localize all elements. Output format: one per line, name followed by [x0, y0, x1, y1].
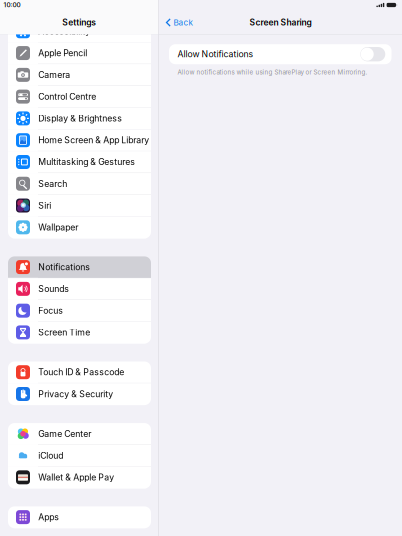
staticText: Wallet & Apple Pay [38, 472, 114, 483]
staticText: Search [38, 178, 67, 189]
button[interactable]: Search [8, 173, 151, 195]
button[interactable]: Screen Time [8, 322, 151, 343]
staticText: Allow notifications while using SharePla… [178, 68, 368, 76]
button[interactable]: Back [159, 15, 197, 29]
button[interactable]: Sounds [8, 278, 151, 300]
button[interactable]: iCloud [8, 445, 151, 467]
staticText: Multitasking & Gestures [38, 157, 135, 167]
staticText: Siri [38, 200, 51, 211]
staticText: Privacy & Security [38, 389, 113, 399]
button[interactable]: Multitasking & Gestures [8, 151, 151, 173]
staticText: Apple Pencil [38, 48, 87, 58]
button[interactable]: Focus [8, 300, 151, 322]
staticText: Screen Sharing [249, 17, 311, 28]
staticText: iCloud [38, 450, 63, 461]
staticText: Sounds [38, 284, 69, 294]
staticText: Accessibility [38, 26, 90, 36]
staticText: Back [173, 18, 192, 27]
button[interactable]: Home Screen & App Library [8, 129, 151, 151]
button[interactable]: Notifications [8, 256, 151, 278]
staticText: Touch ID & Passcode [38, 367, 124, 377]
button[interactable]: Touch ID & Passcode [8, 361, 151, 383]
staticText: Notifications [38, 262, 90, 272]
staticText: Control Centre [38, 91, 96, 102]
staticText: Camera [38, 70, 70, 80]
button[interactable]: Game Center [8, 423, 151, 445]
staticText: Settings [62, 17, 96, 27]
staticText: 10:00 [3, 1, 20, 9]
button[interactable]: Wallet & Apple Pay [8, 467, 151, 488]
button[interactable]: Accessibility [8, 21, 151, 42]
button[interactable]: Control Centre [8, 86, 151, 108]
staticText: Game Center [38, 428, 91, 439]
staticText: Wallpaper [38, 222, 78, 233]
staticText: Screen Time [38, 327, 90, 338]
staticText: Focus [38, 305, 63, 316]
staticText: Apps [38, 512, 59, 522]
button[interactable]: Display & Brightness [8, 108, 151, 129]
button[interactable]: Allow Notifications [169, 44, 391, 64]
button[interactable]: Wallpaper [8, 217, 151, 238]
staticText: Display & Brightness [38, 113, 122, 124]
button[interactable]: Camera [8, 64, 151, 86]
button[interactable]: Siri [8, 195, 151, 217]
staticText: Home Screen & App Library [38, 135, 149, 145]
staticText: Allow Notifications [178, 49, 254, 59]
button[interactable]: Apps [8, 506, 151, 528]
button[interactable]: Privacy & Security [8, 383, 151, 405]
button[interactable]: Apple Pencil [8, 42, 151, 64]
